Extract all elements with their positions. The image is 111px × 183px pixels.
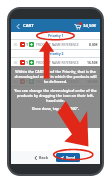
button[interactable]: Increase <box>29 42 34 47</box>
button[interactable]: Send <box>56 153 80 162</box>
staticText: 10.00€ <box>87 79 98 84</box>
staticText: Once done, tap on "SEND". <box>14 106 97 111</box>
staticText: Within the CART mind the Priority, that … <box>14 69 97 84</box>
button[interactable]: Decrease <box>11 58 100 67</box>
staticText: PRODUCT NAME REFERENCE <box>36 43 89 47</box>
button[interactable]: Back <box>14 22 22 30</box>
staticText: PRODUCT NAME REFERENCE <box>36 61 87 65</box>
staticText: You can change the chronological order o… <box>14 88 97 103</box>
staticText: 1 <box>26 42 28 47</box>
button[interactable]: Back <box>32 154 51 161</box>
button[interactable]: Decrease <box>20 60 25 65</box>
button[interactable]: Decrease <box>11 40 100 49</box>
button[interactable]: Cart <box>72 21 82 31</box>
button[interactable]: Decrease <box>20 42 25 47</box>
button[interactable]: Increase <box>29 79 34 84</box>
button[interactable]: Decrease <box>11 77 100 86</box>
staticText: 8.00€ <box>89 42 98 47</box>
staticText: 16.50€ <box>87 60 98 65</box>
staticText: Send <box>66 155 76 160</box>
staticText: Priority 1 <box>48 33 64 38</box>
staticText: PRODUCT NAME REFERENCE <box>36 80 87 84</box>
button[interactable]: Increase <box>29 60 34 65</box>
staticText: 1 <box>26 79 28 84</box>
staticText: Priority 3 <box>48 70 64 75</box>
staticText: 1 <box>26 60 28 65</box>
staticText: 34,50€ <box>83 23 97 29</box>
staticText: CART <box>23 23 34 29</box>
button[interactable]: Decrease <box>20 79 25 84</box>
staticText: Back <box>39 155 49 160</box>
staticText: Priority 2 <box>48 51 64 56</box>
